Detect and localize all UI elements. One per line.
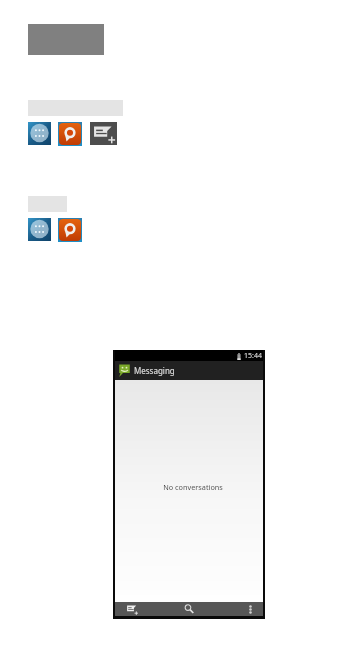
button[interactable]: New message [115,602,149,616]
button[interactable]: More options [237,602,263,616]
button[interactable]: Messaging app [59,219,81,241]
button[interactable]: New message [90,122,117,145]
staticText: No conversations [163,482,223,492]
button[interactable]: All apps [28,218,51,241]
staticText: 15:44 [244,351,262,361]
button[interactable]: Search [172,602,206,616]
staticText: Messaging [134,365,175,376]
button[interactable]: All apps [28,122,51,145]
button[interactable]: Messaging app [59,123,81,145]
